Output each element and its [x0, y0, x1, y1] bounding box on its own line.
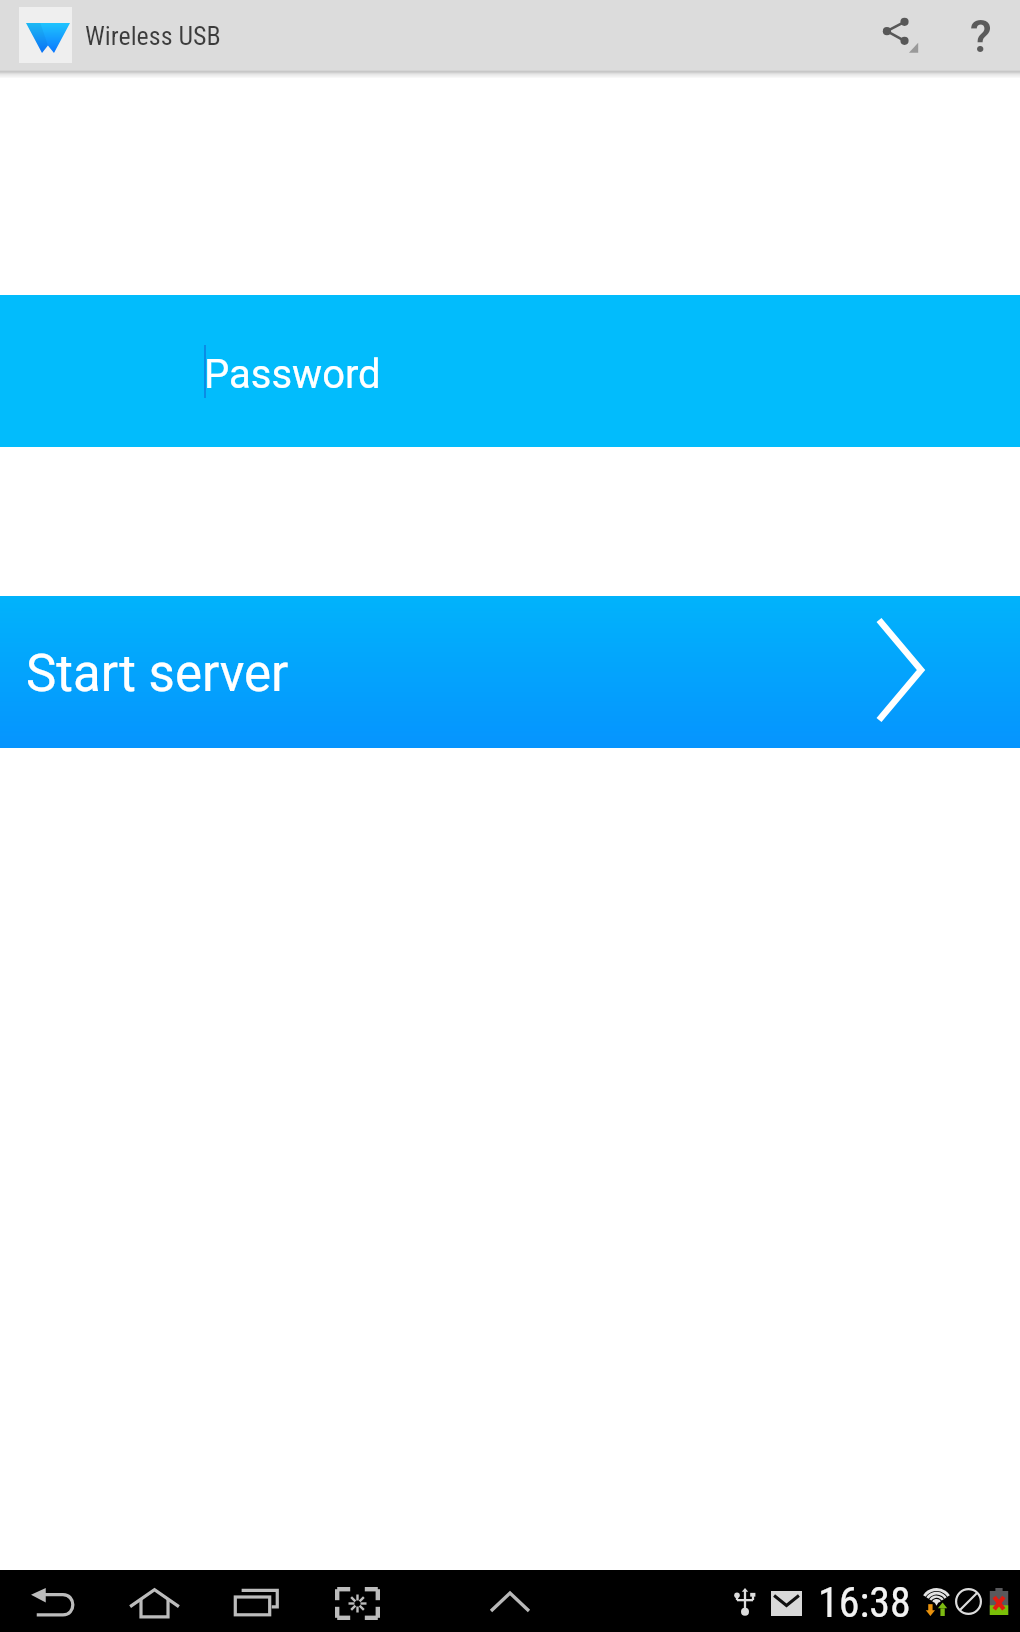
staticText: ? — [970, 11, 992, 63]
staticText: 16:38 — [818, 1578, 911, 1627]
button[interactable]: Home — [123, 1570, 185, 1632]
staticText: Start server — [26, 644, 289, 704]
button[interactable]: Start server — [0, 596, 1020, 748]
button[interactable]: Password field — [0, 295, 1020, 447]
button[interactable]: Share — [870, 0, 944, 70]
button[interactable]: Wireless USB — [0, 0, 235, 70]
staticText: Wireless USB — [85, 21, 221, 51]
button[interactable]: Show more — [479, 1570, 541, 1632]
button[interactable]: Recent apps — [224, 1570, 286, 1632]
button[interactable]: Screenshot — [326, 1570, 388, 1632]
staticText: Password — [204, 351, 381, 398]
button[interactable]: Back — [20, 1570, 82, 1632]
button[interactable]: Help — [944, 0, 1018, 70]
